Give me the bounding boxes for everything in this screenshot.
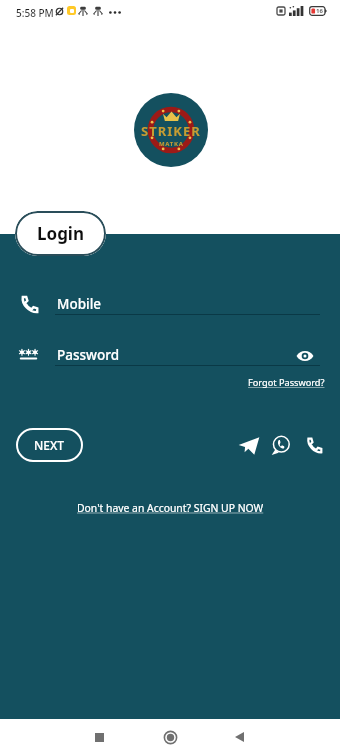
button[interactable]: Call bbox=[303, 435, 323, 455]
button[interactable]: Recents bbox=[85, 723, 113, 751]
button[interactable]: Home bbox=[156, 723, 184, 751]
staticText: MATKA bbox=[159, 140, 184, 148]
staticText: 16 bbox=[316, 7, 323, 15]
button[interactable]: Telegram bbox=[238, 435, 260, 457]
button[interactable]: Show password bbox=[294, 345, 316, 367]
staticText: NEXT bbox=[34, 437, 65, 453]
button[interactable]: Login bbox=[15, 211, 106, 256]
staticText: Mobile bbox=[57, 295, 102, 313]
button[interactable]: WhatsApp bbox=[270, 435, 291, 456]
button[interactable]: Forgot Password? bbox=[248, 376, 325, 389]
button[interactable]: Back bbox=[225, 723, 253, 751]
button[interactable]: Don't have an Account? SIGN UP NOW bbox=[77, 501, 264, 515]
staticText: Password bbox=[57, 346, 120, 364]
staticText: Login bbox=[37, 222, 85, 245]
staticText: STRIKER bbox=[141, 122, 201, 140]
button[interactable]: NEXT bbox=[16, 428, 83, 462]
staticText: 5:58 PM bbox=[16, 6, 54, 20]
